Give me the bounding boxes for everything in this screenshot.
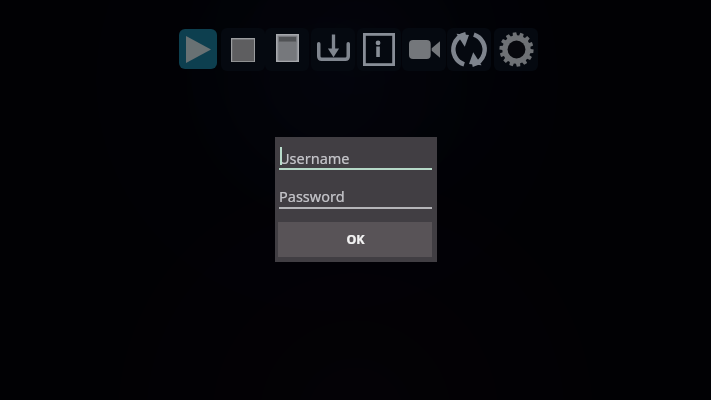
button[interactable]: Username bbox=[277, 141, 434, 171]
staticText: Username bbox=[279, 148, 350, 168]
button[interactable]: Save bbox=[311, 28, 355, 71]
button[interactable]: Password bbox=[277, 181, 434, 207]
button[interactable]: Refresh bbox=[447, 28, 491, 71]
staticText: Password bbox=[279, 186, 345, 206]
button[interactable]: Info bbox=[357, 28, 401, 71]
button[interactable]: Record video bbox=[402, 28, 446, 71]
button[interactable]: Play bbox=[179, 29, 217, 69]
button[interactable]: Stop bbox=[221, 28, 265, 71]
button[interactable]: OK bbox=[278, 222, 432, 257]
staticText: OK bbox=[346, 231, 365, 248]
button[interactable]: Settings bbox=[494, 28, 538, 71]
button[interactable]: Open window bbox=[265, 28, 309, 71]
